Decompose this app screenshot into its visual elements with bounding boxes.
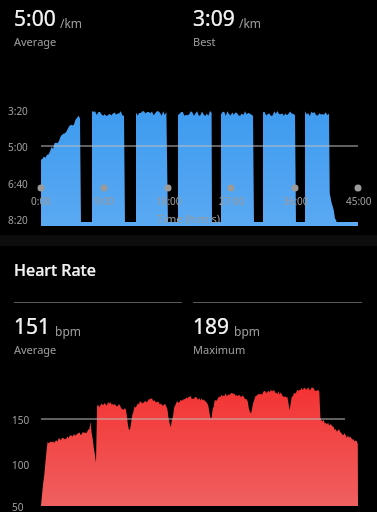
staticText: 27:00 [219, 194, 245, 208]
staticText: 3:09 [193, 4, 235, 33]
staticText: bpm [234, 323, 260, 339]
staticText: Time (h:m:s) [157, 211, 221, 226]
staticText: 3:20 [8, 104, 28, 118]
staticText: 50 [12, 500, 24, 512]
button[interactable]: 151 [14, 302, 182, 357]
button[interactable]: 3:09 [193, 4, 362, 49]
staticText: 5:00 [8, 140, 28, 154]
staticText: Heart Rate [14, 259, 96, 281]
staticText: Average [14, 34, 57, 49]
staticText: 18:00 [156, 194, 182, 208]
staticText: /km [239, 15, 262, 31]
staticText: 6:40 [8, 177, 28, 191]
staticText: 0:00 [31, 194, 51, 208]
button[interactable]: Heart Rate [14, 259, 96, 281]
button[interactable]: 189 [193, 302, 362, 357]
staticText: /km [60, 15, 83, 31]
staticText: 150 [12, 413, 30, 427]
staticText: 100 [12, 458, 30, 472]
staticText: 9:00 [94, 194, 114, 208]
staticText: bpm [55, 323, 81, 339]
staticText: 189 [193, 312, 230, 341]
staticText: 8:20 [8, 213, 28, 227]
staticText: 45:00 [346, 194, 372, 208]
staticText: 151 [14, 312, 51, 341]
staticText: 36:00 [283, 194, 309, 208]
staticText: Maximum [193, 342, 246, 357]
staticText: 5:00 [14, 4, 56, 33]
staticText: Average [14, 342, 57, 357]
button[interactable]: 5:00 [14, 4, 182, 49]
staticText: Best [193, 34, 216, 49]
